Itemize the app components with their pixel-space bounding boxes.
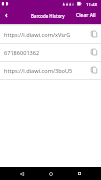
button[interactable]: Copy [88,26,100,43]
button[interactable]: Clear All [71,7,101,24]
staticText: 67186001362 [4,49,88,57]
button[interactable]: https://i.diawi.com/3boU5 [0,62,101,80]
button[interactable]: Navigate up [0,7,13,24]
button[interactable]: Back [7,167,36,180]
staticText: Barcode History [31,13,65,19]
staticText: Clear All [76,12,96,19]
staticText: https://i.diawi.com/xVsrG [4,31,88,39]
button[interactable]: Copy [88,44,100,61]
button[interactable]: https://i.diawi.com/xVsrG [0,26,101,44]
button[interactable]: Recent apps [65,167,94,180]
button[interactable]: Home [36,167,65,180]
button[interactable]: 67186001362 [0,44,101,62]
staticText: 11:48 [86,1,97,7]
button[interactable]: Copy [88,62,100,79]
staticText: https://i.diawi.com/3boU5 [4,67,88,75]
